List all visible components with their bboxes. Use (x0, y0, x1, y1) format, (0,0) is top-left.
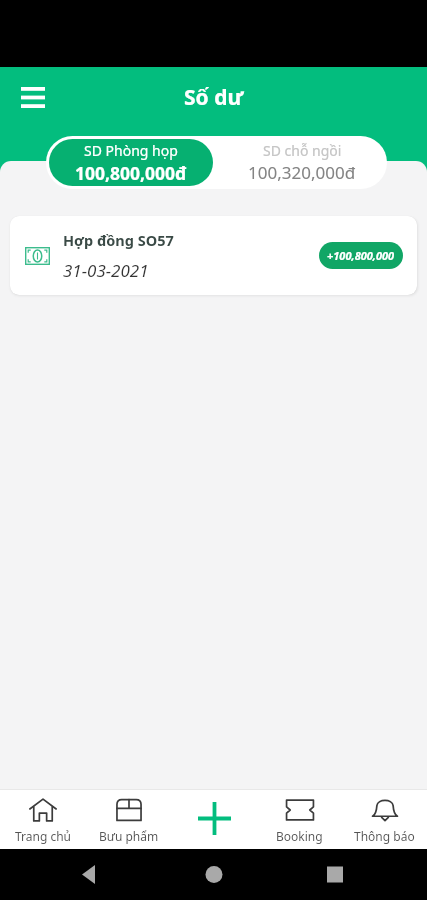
staticText: +100,800,000 (327, 248, 395, 263)
staticText: 100,320,000đ (248, 161, 356, 184)
button[interactable]: Booking (257, 789, 342, 849)
staticText: SD chỗ ngồi (263, 141, 342, 160)
button[interactable]: Bưu phẩm (86, 789, 172, 849)
staticText: Bưu phẩm (99, 828, 159, 844)
staticText: Thông báo (354, 828, 415, 844)
staticText: Booking (276, 828, 323, 844)
button[interactable]: Add (172, 789, 257, 849)
button[interactable]: Trang chủ (0, 789, 86, 849)
button[interactable]: Thông báo (342, 789, 427, 849)
staticText: 100,800,000đ (75, 161, 187, 185)
staticText: 31-03-2021 (63, 259, 149, 282)
button[interactable]: Hợp đồng SO57 (10, 216, 417, 295)
staticText: Hợp đồng SO57 (63, 230, 174, 250)
staticText: Số dư (184, 83, 244, 112)
staticText: Trang chủ (15, 828, 72, 844)
button[interactable]: Menu (9, 73, 57, 121)
button[interactable]: SD chỗ ngồi (219, 139, 384, 186)
staticText: SD Phòng họp (84, 141, 178, 160)
button[interactable]: SD Phòng họp (49, 139, 213, 186)
